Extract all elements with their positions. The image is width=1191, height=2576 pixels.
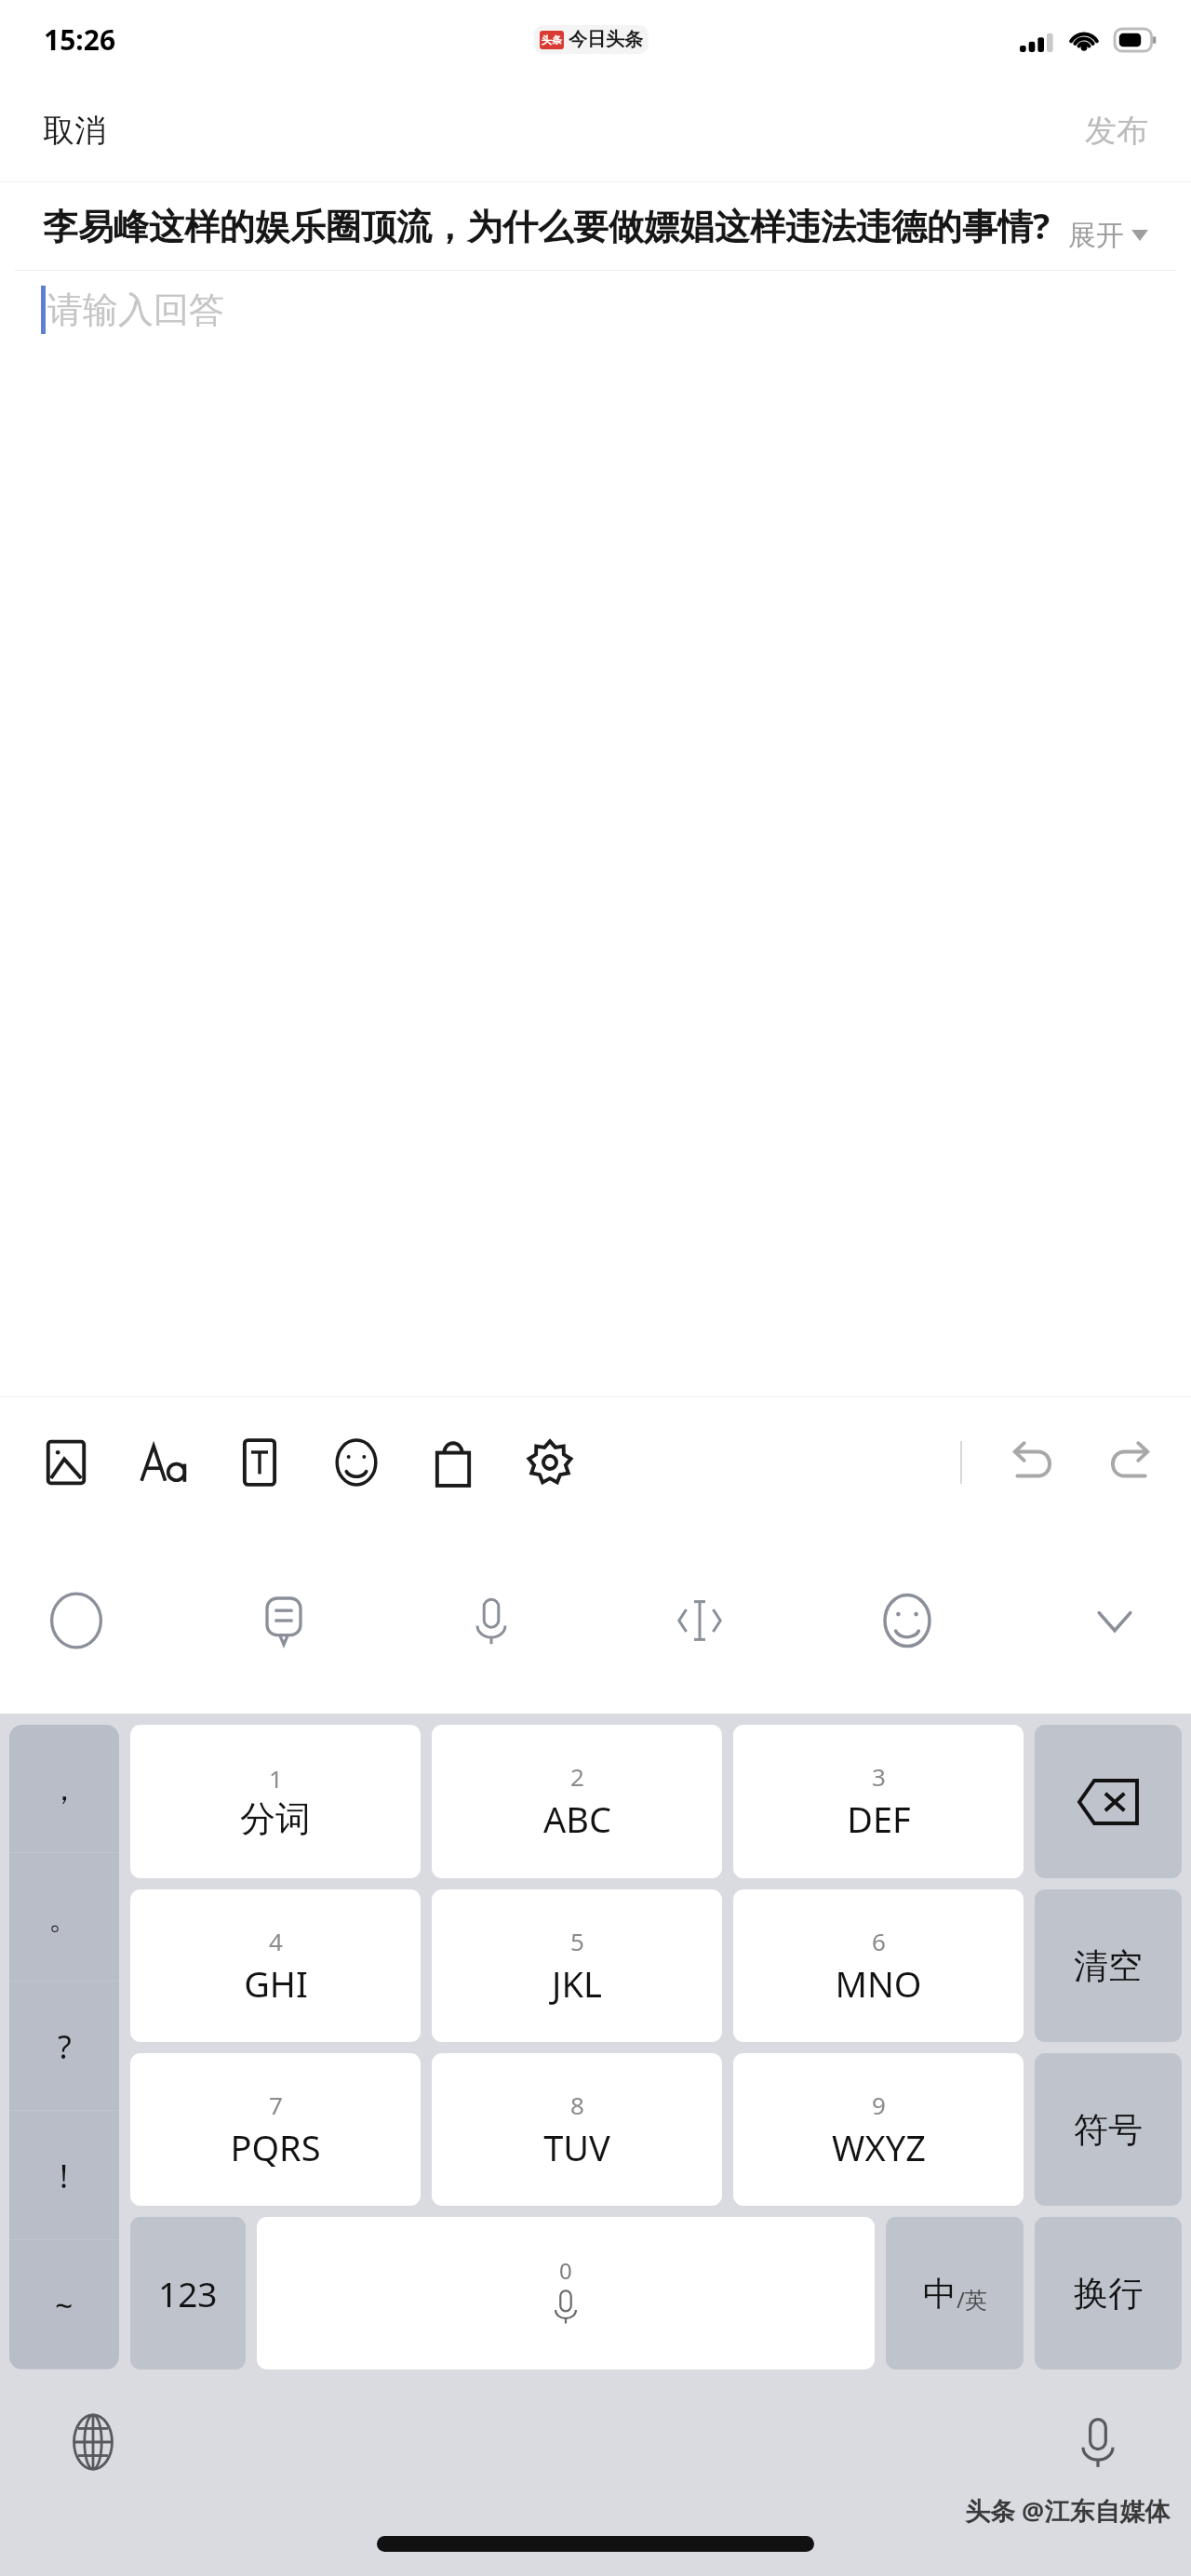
button[interactable]: Redo [1102, 1434, 1159, 1491]
button[interactable]: Input method [33, 1578, 119, 1663]
button[interactable]: 发布 [1042, 94, 1191, 167]
button[interactable]: Undo [1003, 1434, 1061, 1491]
button[interactable]: Voice input [1059, 2403, 1137, 2481]
staticText: JKL [552, 1959, 602, 2008]
button[interactable]: 9 [733, 2053, 1024, 2206]
button[interactable]: 换行 [1035, 2217, 1182, 2369]
staticText: 李易峰这样的娱乐圈顶流，为什么要做嫖娼这样违法违德的事情? [43, 201, 1050, 249]
button[interactable]: ~ [9, 2240, 119, 2369]
button[interactable]: 取消 [0, 94, 149, 167]
button[interactable]: Space [257, 2217, 875, 2369]
staticText: 9 [872, 2089, 886, 2121]
staticText: 7 [269, 2089, 283, 2121]
staticText: TUV [543, 2123, 610, 2171]
button[interactable]: ! [9, 2111, 119, 2240]
staticText: 。 [48, 1898, 80, 1938]
staticText: ~ [55, 2284, 74, 2327]
button[interactable]: 7 [130, 2053, 421, 2206]
button[interactable]: 清空 [1035, 1889, 1182, 2042]
button[interactable]: 。 [9, 1853, 119, 1982]
button[interactable]: Voice input [448, 1578, 534, 1663]
staticText: 15:26 [44, 20, 116, 59]
staticText: 请输入回答 [47, 287, 224, 332]
staticText: ? [58, 2025, 72, 2068]
staticText: /英 [957, 2284, 987, 2315]
staticText: 0 [559, 2255, 572, 2286]
staticText: 5 [570, 1925, 584, 1957]
staticText: 展开 [1068, 218, 1124, 253]
button[interactable]: ， [9, 1725, 119, 1853]
staticText: 123 [158, 2270, 218, 2316]
button[interactable]: Switch language [56, 2405, 130, 2479]
staticText: ， [48, 1769, 80, 1809]
button[interactable]: 4 [130, 1889, 421, 2042]
staticText: 3 [872, 1760, 886, 1793]
staticText: WXYZ [832, 2123, 926, 2171]
staticText: 中 [923, 2273, 957, 2315]
staticText: 头条 [542, 33, 562, 47]
button[interactable]: Backspace [1035, 1725, 1182, 1878]
staticText: PQRS [230, 2123, 321, 2171]
staticText: 头条 @江东自媒体 [965, 2493, 1171, 2528]
staticText: DEF [847, 1795, 911, 1843]
button[interactable]: ? [9, 1982, 119, 2111]
staticText: 取消 [43, 111, 106, 151]
button[interactable]: Text style [134, 1434, 192, 1491]
button[interactable]: 2 [432, 1725, 722, 1878]
button[interactable]: Keyboard layout [241, 1578, 327, 1663]
staticText: 2 [570, 1760, 584, 1793]
button[interactable]: 5 [432, 1889, 722, 2042]
staticText: 清空 [1074, 1944, 1143, 1988]
staticText: ABC [543, 1795, 611, 1843]
staticText: 今日头条 [569, 28, 643, 51]
staticText: ! [60, 2155, 69, 2197]
button[interactable]: 123 [130, 2217, 246, 2369]
button[interactable]: 符号 [1035, 2053, 1182, 2206]
staticText: 4 [269, 1925, 283, 1957]
button[interactable]: 1 [130, 1725, 421, 1878]
staticText: 8 [570, 2089, 584, 2121]
button[interactable]: 中 [886, 2217, 1024, 2369]
staticText: 发布 [1085, 111, 1148, 151]
button[interactable]: Move cursor [657, 1578, 743, 1663]
button[interactable]: Hide keyboard [1072, 1578, 1158, 1663]
button[interactable]: 6 [733, 1889, 1024, 2042]
button[interactable]: Shop [424, 1434, 482, 1491]
button[interactable]: Emoji [864, 1578, 950, 1663]
button[interactable]: 8 [432, 2053, 722, 2206]
staticText: 换行 [1074, 2272, 1143, 2316]
staticText: 6 [872, 1925, 886, 1957]
button[interactable]: Title [231, 1434, 288, 1491]
button[interactable]: Insert image [37, 1434, 95, 1491]
button[interactable]: Emoji [328, 1434, 385, 1491]
staticText: 分词 [240, 1796, 311, 1841]
button[interactable]: 展开 [1068, 218, 1148, 253]
staticText: 1 [269, 1762, 283, 1795]
button[interactable]: 请输入回答 [41, 286, 1191, 334]
staticText: MNO [835, 1959, 922, 2008]
staticText: GHI [244, 1959, 308, 2008]
button[interactable]: 3 [733, 1725, 1024, 1878]
staticText: 符号 [1074, 2108, 1143, 2152]
button[interactable]: Settings [521, 1434, 579, 1491]
